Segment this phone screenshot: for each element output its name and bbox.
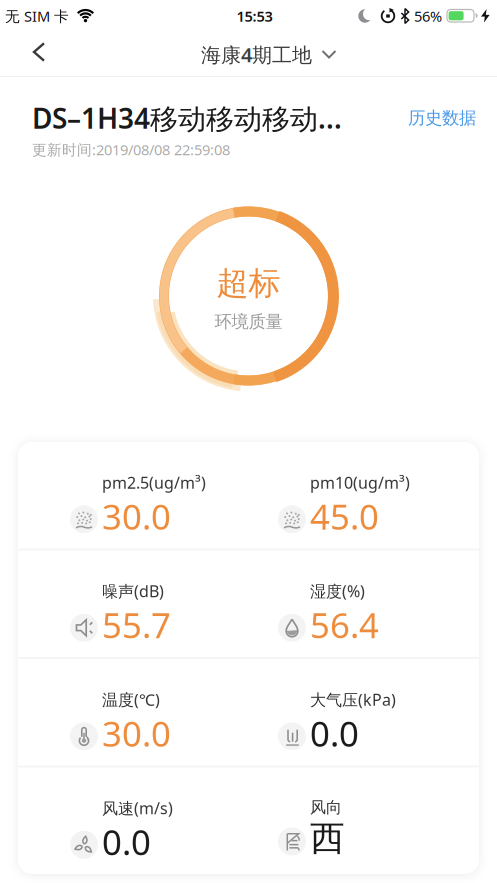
staticText: 更新时间:2019/08/08 22:59:08 bbox=[32, 140, 230, 159]
staticText: 56.4 bbox=[310, 602, 379, 648]
staticText: 西 bbox=[310, 817, 345, 860]
button[interactable]: 历史数据 bbox=[408, 107, 476, 129]
staticText: 55.7 bbox=[102, 602, 171, 648]
staticText: 超标 bbox=[216, 264, 280, 303]
staticText: 30.0 bbox=[102, 493, 171, 539]
staticText: 海康4期工地 bbox=[201, 41, 312, 68]
staticText: pm10(ug/m³) bbox=[310, 472, 410, 493]
staticText: 56% bbox=[414, 6, 442, 26]
staticText: 噪声(dB) bbox=[102, 580, 164, 602]
staticText: pm2.5(ug/m³) bbox=[102, 472, 206, 493]
staticText: 无 SIM 卡 bbox=[5, 6, 69, 26]
staticText: 湿度(%) bbox=[310, 580, 365, 602]
staticText: 环境质量 bbox=[214, 311, 282, 332]
staticText: 风向 bbox=[310, 797, 342, 817]
staticText: DS–1H34移动移动移动... bbox=[32, 99, 342, 137]
staticText: 历史数据 bbox=[408, 107, 476, 129]
staticText: 0.0 bbox=[102, 819, 151, 865]
button[interactable]: 海康4期工地 bbox=[201, 41, 336, 68]
button[interactable] bbox=[0, 33, 65, 76]
staticText: 风速(m/s) bbox=[102, 797, 173, 819]
staticText: 30.0 bbox=[102, 710, 171, 756]
staticText: 45.0 bbox=[310, 493, 379, 539]
staticText: 15:53 bbox=[236, 6, 272, 26]
staticText: 0.0 bbox=[310, 710, 359, 756]
staticText: 温度(℃) bbox=[102, 689, 160, 710]
staticText: 大气压(kPa) bbox=[310, 689, 396, 710]
